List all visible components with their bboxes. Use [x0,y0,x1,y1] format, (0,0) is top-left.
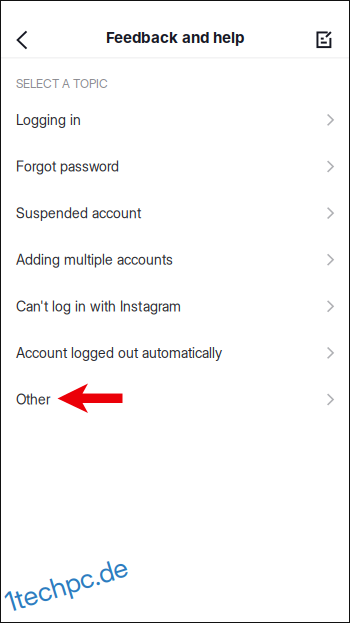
button[interactable]: Submit feedback [300,23,350,57]
staticText: Forgot password [16,158,119,175]
button[interactable]: Can't log in with Instagram [0,283,350,330]
button[interactable]: Adding multiple accounts [0,236,350,283]
button[interactable]: Other [0,376,350,423]
button[interactable]: Back [0,23,44,57]
staticText: SELECT A TOPIC [16,76,108,91]
staticText: Suspended account [16,205,141,221]
button[interactable]: Account logged out automatically [0,330,350,376]
staticText: Other [16,391,51,408]
button[interactable]: Forgot password [0,143,350,190]
staticText: Logging in [16,111,81,128]
staticText: Account logged out automatically [16,344,222,361]
staticText: Feedback and help [106,28,244,47]
button[interactable]: Logging in [0,97,350,143]
staticText: 1techpc.de [3,568,130,601]
staticText: Can't log in with Instagram [16,298,181,315]
button[interactable]: Suspended account [0,190,350,236]
staticText: Adding multiple accounts [16,251,173,268]
